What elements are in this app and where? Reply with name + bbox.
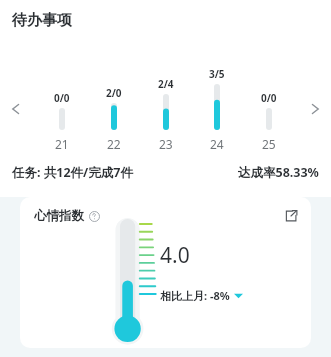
button[interactable]: 任务: 共12件/完成7件 <box>12 164 319 181</box>
staticText: 3/5 <box>209 67 225 81</box>
button[interactable]: 0/0 <box>40 66 84 152</box>
staticText: 22 <box>107 136 121 152</box>
staticText: 2/0 <box>106 86 122 100</box>
button[interactable]: 下一页 <box>299 78 331 140</box>
staticText: 0/0 <box>54 91 70 105</box>
button[interactable]: 0/0 <box>247 66 291 152</box>
staticText: 心情指数 <box>34 208 84 224</box>
staticText: 25 <box>262 136 276 152</box>
button[interactable]: 2/4 <box>144 66 188 152</box>
button[interactable]: 3/5 <box>195 66 239 152</box>
staticText: 24 <box>210 136 224 152</box>
staticText: 0/0 <box>261 91 277 105</box>
button[interactable]: 2/0 <box>92 66 136 152</box>
staticText: 待办事项 <box>12 11 72 30</box>
button[interactable]: 打开详情 <box>281 206 301 226</box>
staticText: 达成率58.33% <box>238 164 319 181</box>
staticText: 4.0 <box>160 241 190 270</box>
staticText: 相比上月: -8% <box>160 288 230 303</box>
staticText: 2/4 <box>158 77 174 91</box>
staticText: 任务: 共12件/完成7件 <box>12 164 133 181</box>
staticText: 23 <box>159 136 173 152</box>
staticText: 21 <box>55 136 69 152</box>
button[interactable]: 心情指数 <box>20 197 311 348</box>
button[interactable]: 上一页 <box>0 78 32 140</box>
